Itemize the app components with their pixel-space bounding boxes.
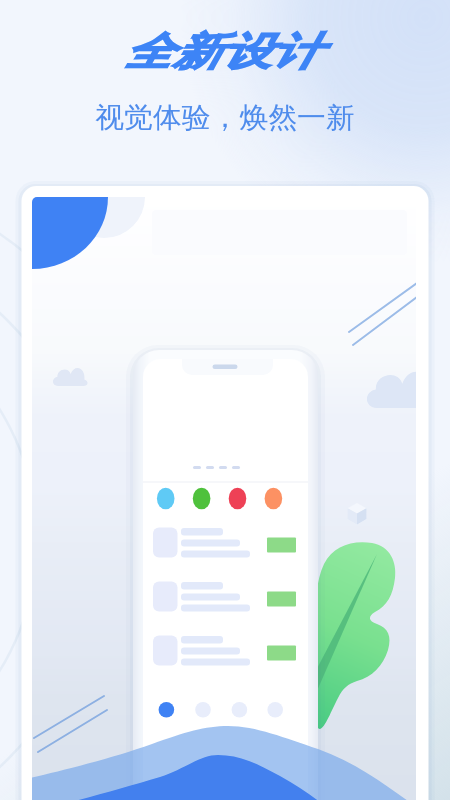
staticText: 全新设计 [124, 27, 320, 76]
staticText: 视觉体验，焕然一新 [95, 100, 355, 135]
